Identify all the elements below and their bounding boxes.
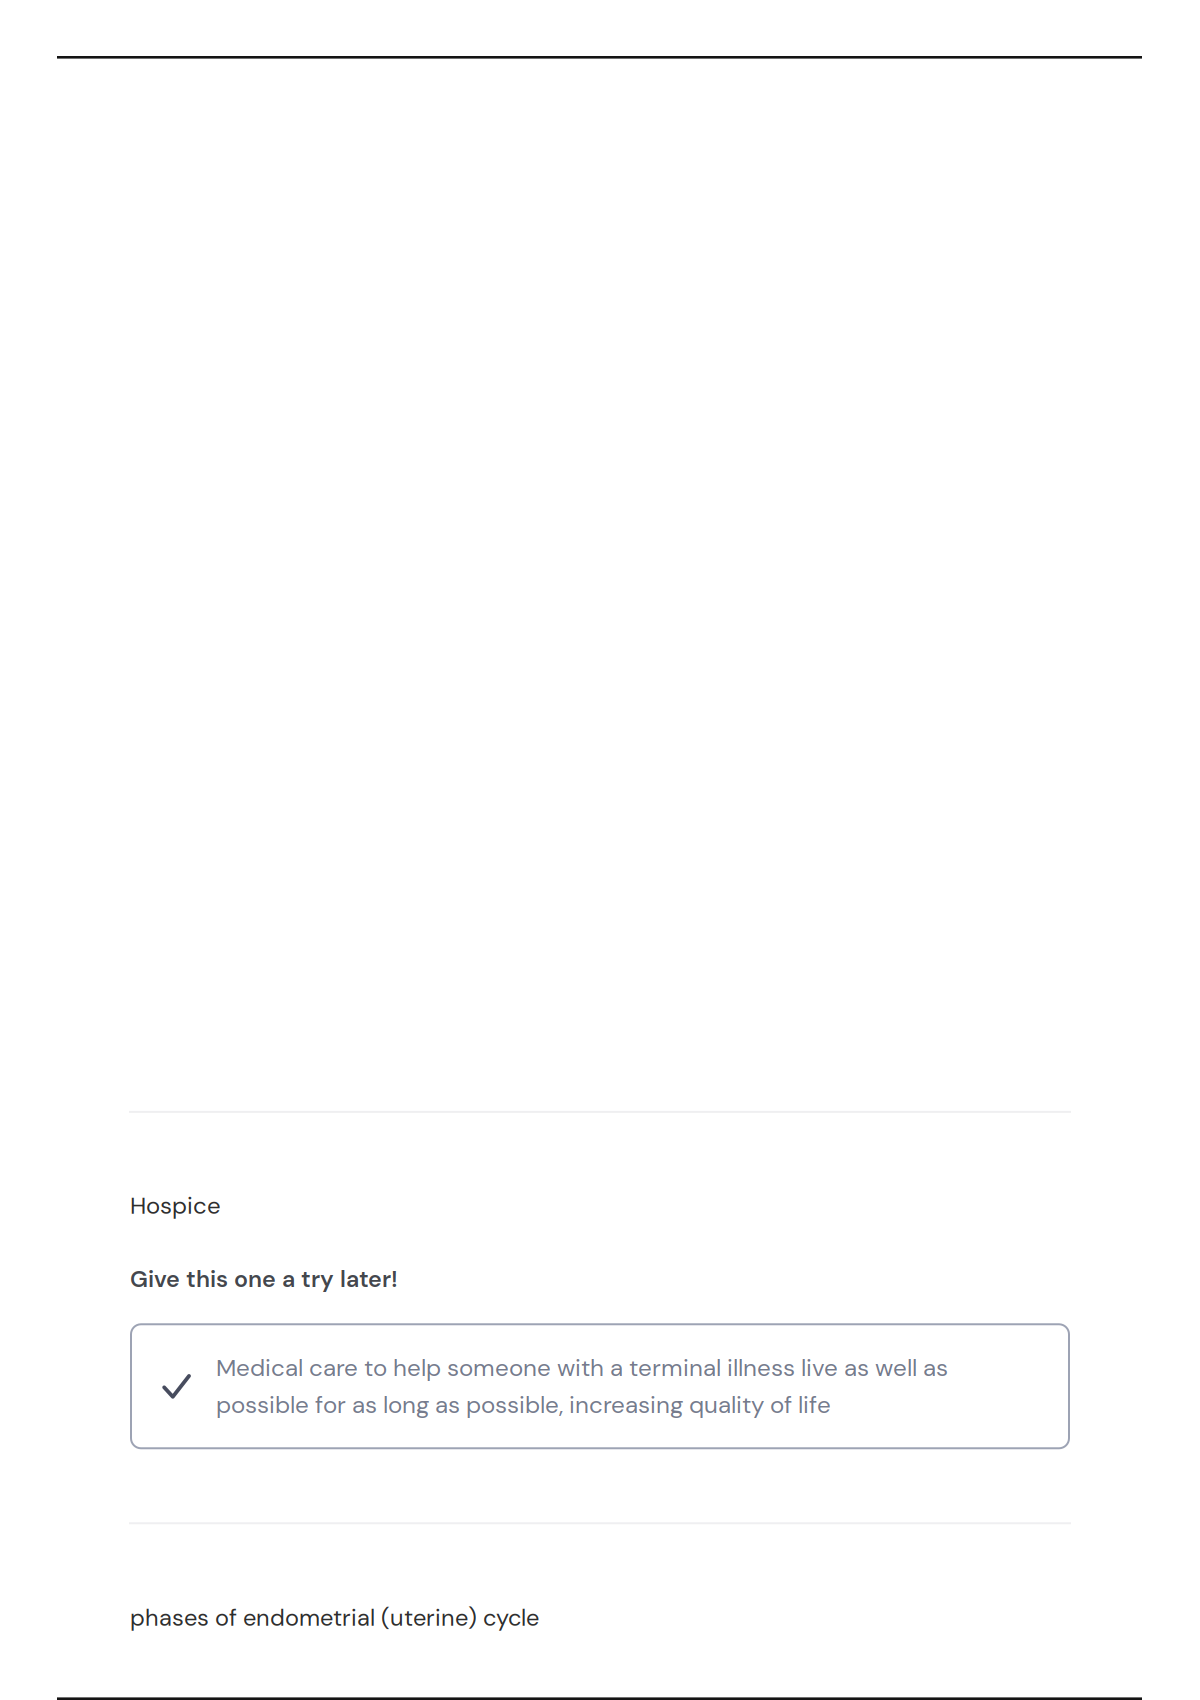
- staticText: Medical care to help someone with a term…: [216, 1352, 948, 1420]
- staticText: phases of endometrial (uterine) cycle: [130, 1602, 539, 1633]
- staticText: Give this one a try later!: [130, 1264, 398, 1294]
- staticText: Hospice: [130, 1190, 221, 1221]
- button[interactable]: Medical care to help someone with a term…: [131, 1324, 1069, 1448]
